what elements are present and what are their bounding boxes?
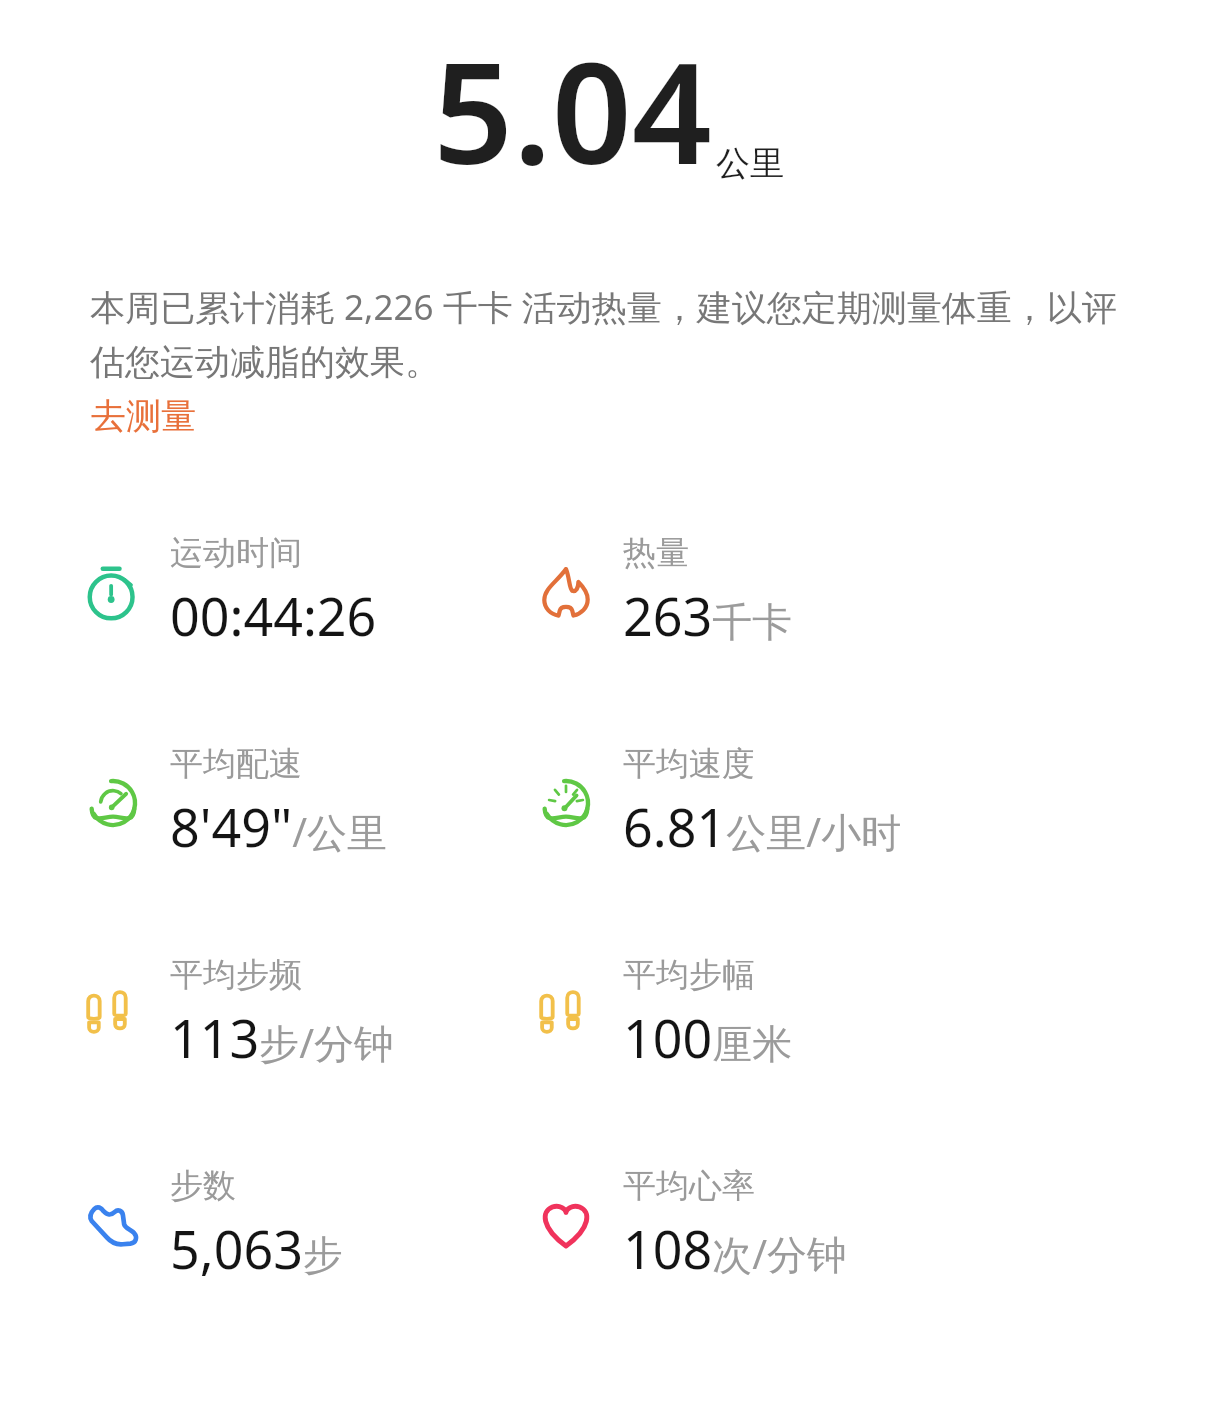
staticText: 108次/分钟 [623, 1213, 848, 1284]
other: 平均配速 [82, 772, 144, 834]
staticText: 00:44:26 [170, 580, 377, 651]
staticText: 本周已累计消耗 2,226 千卡 活动热量，建议您定期测量体重，以评估您运动减脂… [90, 283, 1144, 384]
button[interactable]: 热量 [535, 532, 799, 651]
button[interactable]: 去测量 [90, 392, 197, 440]
staticText: 平均速度 [623, 743, 755, 785]
staticText: 平均步幅 [623, 954, 755, 996]
staticText: 263千卡 [623, 580, 793, 651]
staticText: 113步/分钟 [170, 1002, 395, 1073]
staticText: 5,063步 [170, 1213, 343, 1284]
other: 平均速度 [535, 772, 597, 834]
staticText: 运动时间 [170, 532, 302, 574]
staticText: 6.81公里/小时 [623, 791, 902, 862]
button[interactable]: 平均心率 [535, 1165, 854, 1284]
staticText: 平均配速 [170, 743, 302, 785]
staticText: 去测量 [91, 394, 196, 438]
button[interactable]: 平均步频 [82, 954, 401, 1073]
staticText: 100厘米 [623, 1002, 793, 1073]
other: 步数 [82, 1194, 144, 1256]
staticText: 步数 [170, 1165, 236, 1207]
staticText: 公里 [716, 142, 784, 185]
staticText: 5.04 [433, 14, 712, 205]
other: 平均步幅 [535, 983, 597, 1045]
staticText: 平均步频 [170, 954, 302, 996]
other: 热量 [535, 561, 597, 623]
button[interactable]: 平均配速 [82, 743, 394, 862]
staticText: 8'49"/公里 [170, 791, 388, 862]
button[interactable]: 平均步幅 [535, 954, 799, 1073]
other: 平均心率 [535, 1194, 597, 1256]
other: 平均步频 [82, 983, 144, 1045]
button[interactable]: 运动时间 [82, 532, 383, 651]
button[interactable]: 平均速度 [535, 743, 908, 862]
staticText: 热量 [623, 532, 689, 574]
button[interactable]: 步数 [82, 1165, 349, 1284]
other: 运动时间 [82, 561, 144, 623]
staticText: 平均心率 [623, 1165, 755, 1207]
